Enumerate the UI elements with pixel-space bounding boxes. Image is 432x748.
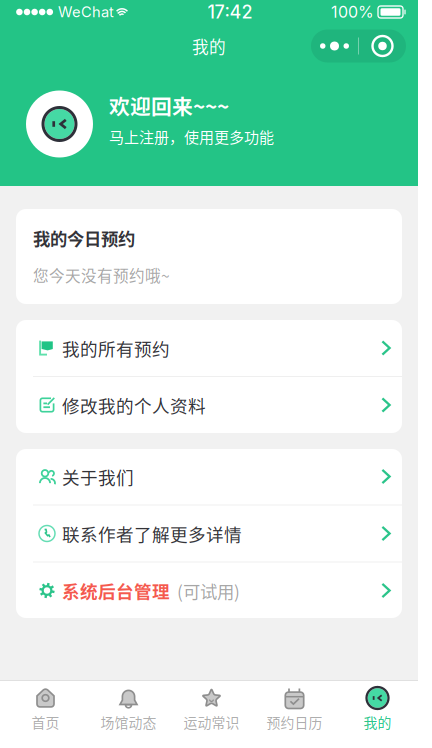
button[interactable]: 场馆动态 — [87, 681, 170, 737]
button[interactable]: 我的 — [336, 681, 419, 737]
staticText: 系统后台管理 — [62, 578, 170, 603]
staticText: 预约日历 — [266, 712, 322, 732]
button[interactable]: 首页 — [4, 681, 87, 737]
button[interactable]: More — [311, 30, 358, 62]
staticText: 场馆动态 — [100, 712, 156, 732]
staticText: 我的 — [192, 34, 226, 58]
button[interactable]: 修改我的个人资料 — [16, 377, 402, 433]
staticText: 17:42 — [207, 1, 252, 23]
staticText: 我的所有预约 — [62, 335, 170, 361]
staticText: 修改我的个人资料 — [62, 392, 206, 418]
staticText: 100% — [331, 2, 374, 22]
staticText: 马上注册，使用更多功能 — [109, 126, 274, 147]
staticText: 关于我们 — [62, 464, 134, 489]
button[interactable]: 我的所有预约 — [16, 320, 402, 376]
button[interactable]: 预约日历 — [253, 681, 336, 737]
staticText: 联系作者了解更多详情 — [62, 521, 242, 546]
staticText: 首页 — [31, 712, 59, 732]
staticText: 运动常识 — [183, 712, 239, 732]
button[interactable]: 关于我们 — [16, 448, 402, 504]
button[interactable]: 联系作者了解更多详情 — [16, 505, 402, 561]
button[interactable]: Close mini program — [359, 30, 406, 62]
staticText: 您今天没有预约哦~ — [33, 264, 170, 286]
staticText: 欢迎回来~~~ — [109, 90, 229, 120]
staticText: 我的今日预约 — [33, 225, 135, 251]
staticText: (可试用) — [177, 578, 240, 603]
button[interactable]: 运动常识 — [170, 681, 253, 737]
staticText: 我的 — [363, 712, 391, 732]
button[interactable]: 系统后台管理 — [16, 562, 402, 618]
staticText: WeChat — [58, 3, 114, 21]
